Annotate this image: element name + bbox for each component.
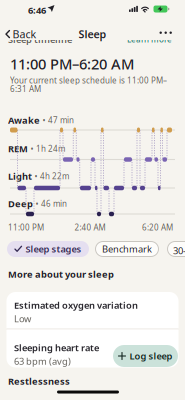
staticText: Estimated oxygen variation (14, 299, 138, 311)
staticText: 46 min (41, 198, 67, 209)
button[interactable]: Sleeping heart rate (6, 329, 178, 367)
staticText: Learn more (127, 34, 172, 45)
button[interactable]: Log sleep (113, 345, 178, 367)
staticText: 4h 22m (40, 171, 69, 181)
staticText: Sleep stages (25, 243, 81, 255)
staticText: Deep (8, 197, 33, 210)
staticText: 30-day avg (173, 244, 185, 257)
staticText: Back (12, 27, 36, 41)
staticText: 11:00 PM–6:20 AM (10, 54, 134, 73)
button[interactable]: Learn more (0, 34, 172, 45)
staticText: Light (8, 170, 32, 182)
button[interactable]: More options (159, 31, 172, 34)
staticText: 11:00 PM (8, 222, 44, 233)
button[interactable]: Back (5, 27, 36, 41)
staticText: 47 min (48, 115, 74, 125)
staticText: 63 bpm (avg) (14, 355, 71, 367)
staticText: Log sleep (129, 350, 172, 362)
staticText: 6:31 AM (10, 83, 41, 94)
staticText: Low (14, 312, 31, 325)
staticText: 2:40 AM (74, 222, 105, 233)
staticText: Sleeping heart rate (14, 341, 99, 354)
button[interactable]: Estimated oxygen variation (6, 292, 178, 328)
staticText: Restlessness (8, 375, 70, 387)
staticText: Benchmark (102, 243, 152, 255)
staticText: Your current sleep schedule is 11:00 PM– (10, 75, 167, 86)
button[interactable]: 30-day avg (167, 241, 185, 257)
staticText: 1h 24m (36, 143, 65, 154)
button[interactable]: Benchmark (95, 241, 159, 257)
staticText: More about your sleep (8, 268, 114, 280)
staticText: • (35, 198, 38, 209)
staticText: Awake (8, 114, 40, 126)
staticText: • (34, 171, 37, 181)
staticText: Sleep timeline (8, 33, 72, 46)
staticText: REM (8, 142, 28, 155)
staticText: • (30, 143, 33, 154)
staticText: Sleep (78, 27, 106, 41)
button[interactable]: Sleep stages (7, 241, 89, 257)
staticText: 6:20 AM (142, 222, 173, 233)
staticText: • (42, 115, 45, 125)
staticText: 6:46 (28, 4, 46, 16)
